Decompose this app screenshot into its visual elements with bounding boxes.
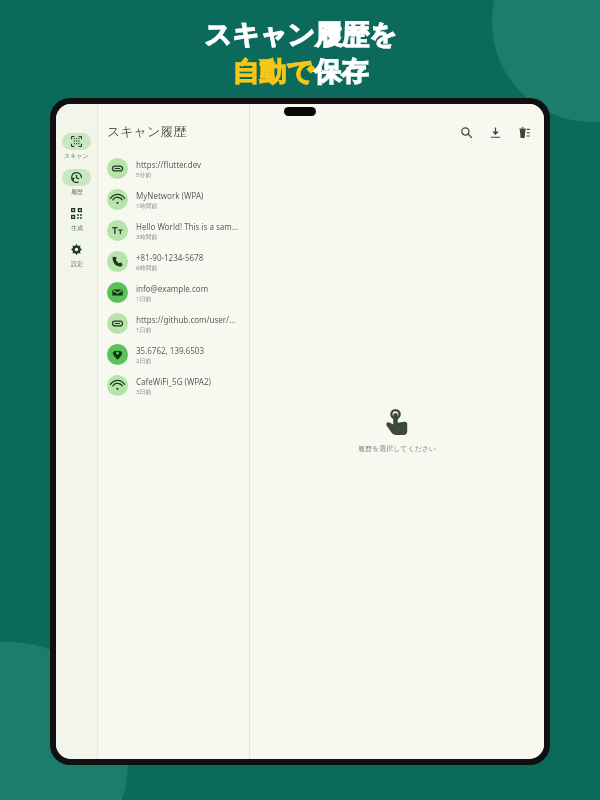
button[interactable]: 設定 [60,240,93,269]
staticText: Hello World! This is a sam… [136,221,239,232]
staticText: CafeWiFi_5G (WPA2) [136,376,211,387]
staticText: https://flutter.dev [136,159,202,170]
button[interactable]: MyNetwork (WPA) [98,184,249,215]
button[interactable]: Hello World! This is a sam… [98,215,249,246]
staticText: 35.6762, 139.6503 [136,345,204,356]
staticText: 3時間前 [136,233,158,241]
staticText: 保存 [314,55,368,89]
staticText: 6時間前 [136,264,158,272]
button[interactable]: 履歴 [60,168,93,197]
button[interactable]: Delete all [515,123,533,141]
staticText: 生成 [71,224,83,232]
staticText: スキャン [64,152,89,160]
button[interactable]: https://flutter.dev [98,153,249,184]
staticText: https://github.com/user/q… [136,314,240,325]
staticText: 2日前 [136,357,152,365]
staticText: 履歴を選択してください [358,444,437,453]
staticText: info@example.com [136,283,209,294]
button[interactable]: スキャン [60,132,93,161]
staticText: +81-90-1234-5678 [136,252,204,263]
staticText: スキャン履歴 [107,123,187,139]
staticText: 1日前 [136,295,152,303]
button[interactable]: https://github.com/user/q… [98,308,249,339]
staticText: 設定 [71,260,83,268]
button[interactable]: info@example.com [98,277,249,308]
staticText: 自動で [232,55,314,89]
button[interactable]: Search [457,123,475,141]
staticText: 1日前 [136,326,152,334]
staticText: 1時間前 [136,202,158,210]
button[interactable]: 生成 [60,204,93,233]
staticText: MyNetwork (WPA) [136,190,204,201]
staticText: 履歴 [71,188,83,196]
button[interactable]: +81-90-1234-5678 [98,246,249,277]
button[interactable]: CafeWiFi_5G (WPA2) [98,370,249,401]
button[interactable]: Download [486,123,504,141]
staticText: 3日前 [136,388,152,396]
staticText: 5分前 [136,171,152,179]
button[interactable]: 35.6762, 139.6503 [98,339,249,370]
staticText: スキャン履歴を [204,18,397,52]
